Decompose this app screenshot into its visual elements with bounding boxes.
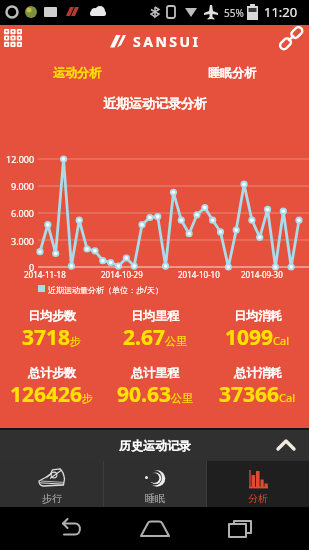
staticText: 2014-10-10 — [178, 269, 220, 280]
staticText: 37366Cal — [219, 380, 296, 409]
button[interactable]: 睡眠分析 — [154, 60, 309, 84]
staticText: 0 — [29, 261, 35, 273]
staticText: 总计步数 — [28, 365, 76, 380]
staticText: 6.000 — [11, 207, 35, 219]
button[interactable] — [54, 518, 84, 540]
staticText: 总计消耗 — [234, 365, 282, 380]
button[interactable]: 步行 — [0, 461, 103, 507]
staticText: 9.000 — [11, 180, 35, 192]
staticText: 3718步 — [22, 323, 82, 352]
staticText: 3.000 — [11, 235, 35, 247]
button[interactable] — [139, 518, 171, 540]
button[interactable] — [0, 25, 30, 53]
staticText: 1099Cal — [225, 323, 290, 352]
staticText: 近期运动记录分析 — [103, 95, 207, 111]
staticText: 睡眠 — [145, 492, 165, 505]
staticText: 日均消耗 — [234, 308, 282, 323]
button[interactable]: 运动分析 — [0, 60, 154, 84]
staticText: 2014-11-18 — [24, 269, 66, 280]
staticText: 2.67公里 — [123, 323, 187, 352]
staticText: 历史运动记录 — [119, 438, 191, 453]
staticText: 日均里程 — [131, 308, 179, 323]
staticText: 运动分析 — [53, 65, 101, 80]
button[interactable] — [225, 518, 255, 540]
staticText: 126426步 — [10, 380, 94, 409]
staticText: 步行 — [42, 492, 62, 505]
button[interactable]: 分析 — [207, 461, 309, 507]
staticText: 分析 — [248, 492, 268, 505]
staticText: 55% — [224, 6, 244, 20]
staticText: 2014-09-30 — [241, 269, 283, 280]
staticText: 11:20 — [264, 3, 298, 21]
staticText: 12.000 — [6, 153, 35, 165]
button[interactable] — [275, 25, 309, 57]
staticText: 2014-10-29 — [101, 269, 143, 280]
staticText: 近期运动量分析（单位：步/天） — [48, 284, 163, 295]
staticText: 90.63公里 — [117, 380, 193, 409]
staticText: 总计里程 — [131, 365, 179, 380]
button[interactable]: 历史运动记录 — [0, 428, 309, 461]
staticText: 睡眠分析 — [208, 65, 256, 80]
staticText: 日均步数 — [28, 308, 76, 323]
button[interactable]: 睡眠 — [104, 461, 206, 507]
staticText: SANSUI — [133, 32, 201, 51]
